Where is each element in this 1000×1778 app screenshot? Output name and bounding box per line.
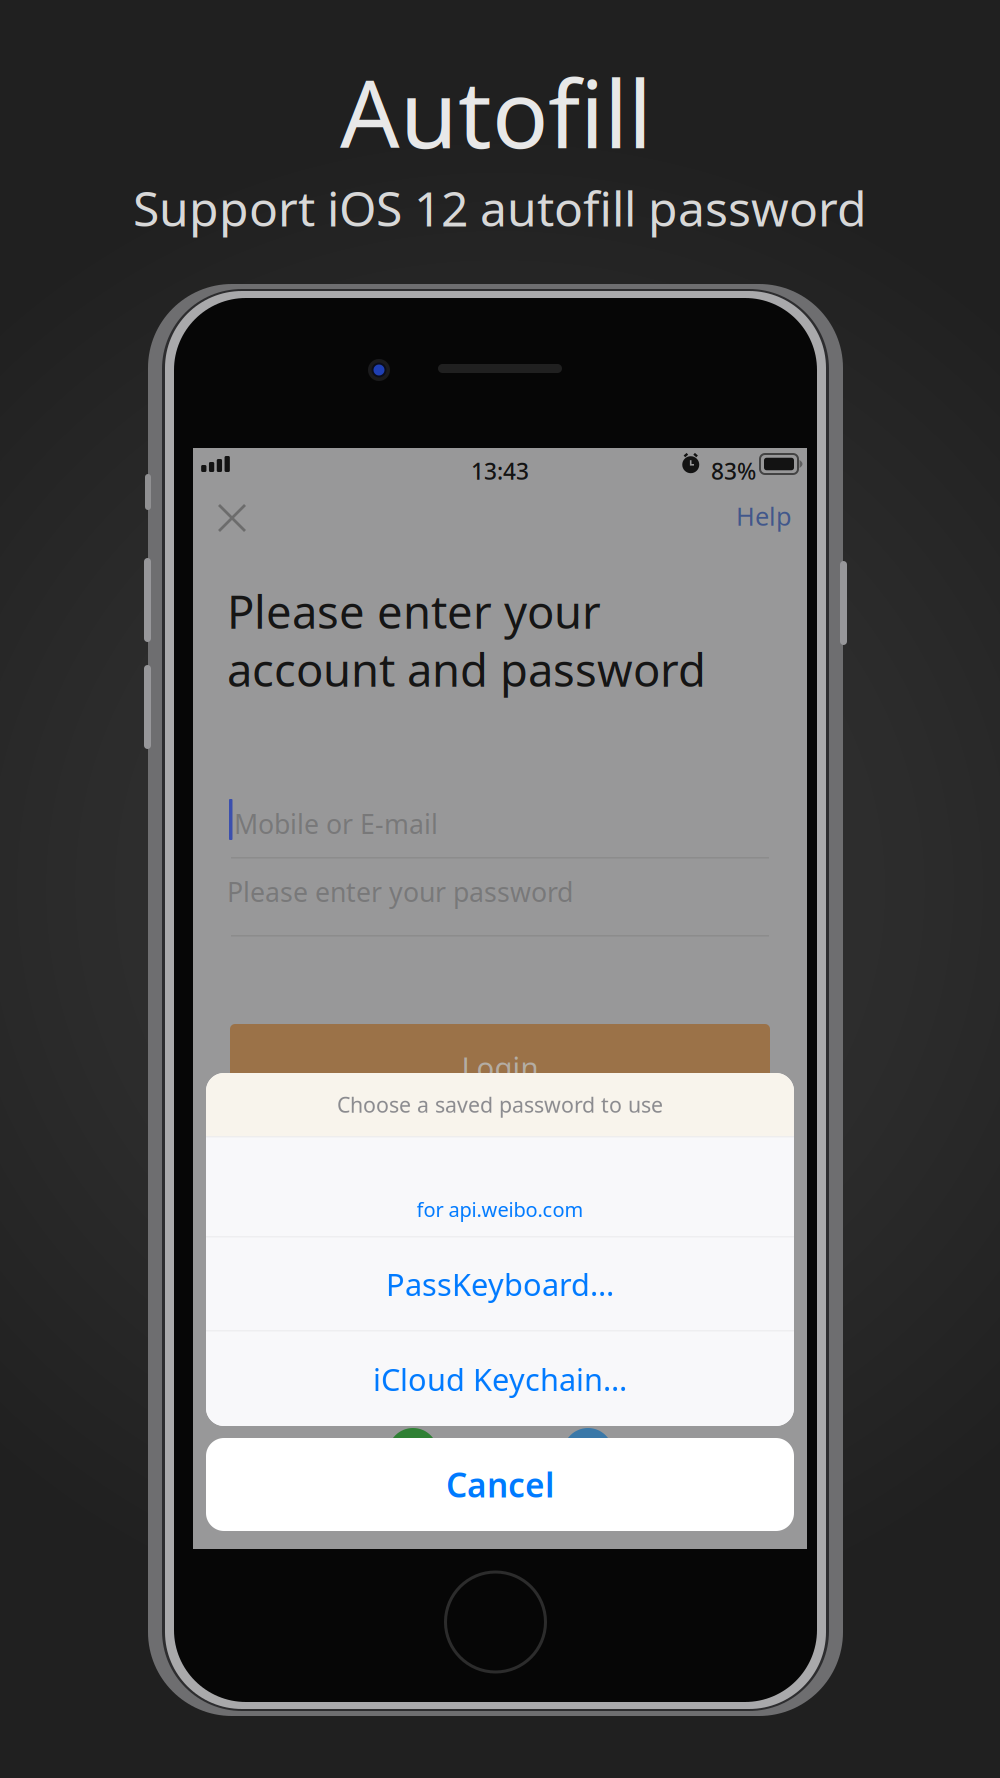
staticText: Choose a saved password to use (337, 1090, 663, 1119)
button[interactable]: iCloud Keychain… (206, 1331, 794, 1426)
button[interactable]: Help (716, 487, 812, 545)
staticText: Help (736, 499, 792, 533)
staticText: Support iOS 12 autofill password (133, 176, 867, 240)
staticText: for api.weibo.com (416, 1196, 583, 1222)
button[interactable]: Login (230, 1024, 770, 1110)
staticText: Autofill (340, 50, 652, 174)
staticText: Please enter your (227, 581, 601, 641)
button[interactable]: for api.weibo.com (206, 1137, 794, 1236)
staticText: 13:43 (471, 456, 529, 486)
button[interactable]: PassKeyboard… (206, 1237, 794, 1330)
button[interactable]: Cancel (206, 1438, 794, 1531)
staticText: 83% (711, 456, 756, 486)
staticText: PassKeyboard… (386, 1264, 614, 1304)
staticText: Mobile or E-mail (234, 806, 438, 841)
staticText: Cancel (446, 1462, 554, 1507)
staticText: Login (461, 1047, 538, 1086)
staticText: account and password (227, 639, 706, 699)
staticText: iCloud Keychain… (373, 1359, 627, 1399)
button[interactable]: Close (202, 489, 262, 547)
staticText: Please enter your password (227, 874, 573, 909)
